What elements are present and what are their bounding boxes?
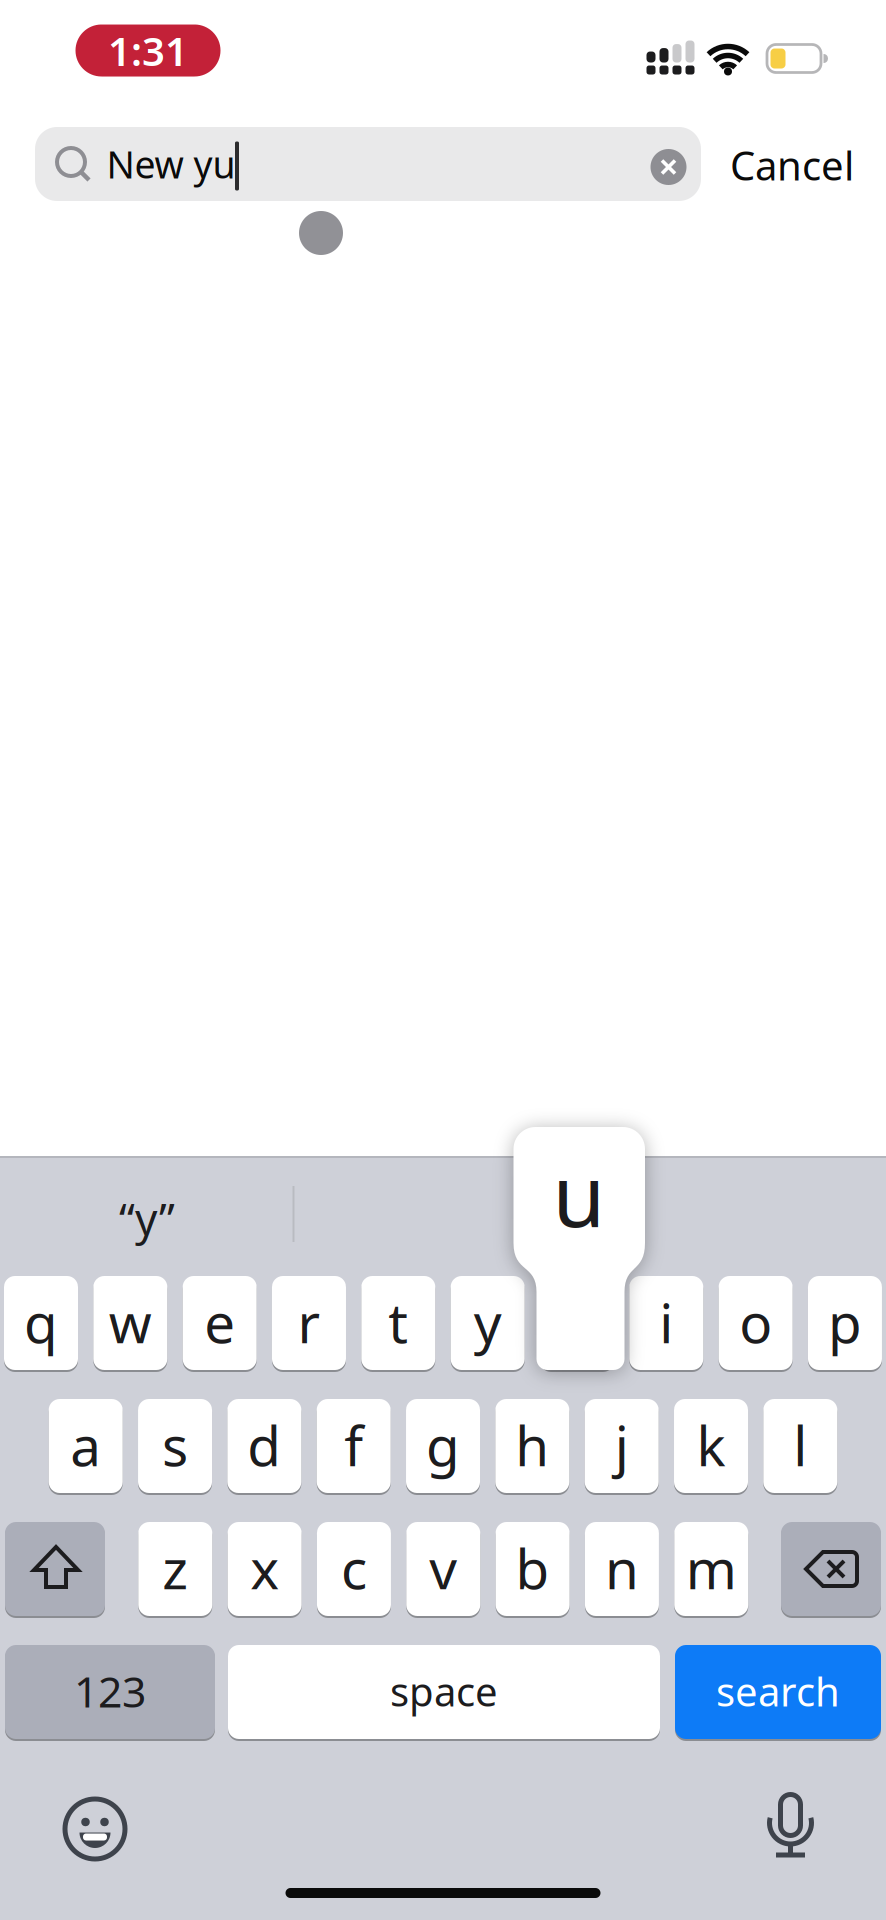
staticText: d	[247, 1409, 281, 1481]
button[interactable]: z	[138, 1522, 212, 1618]
button[interactable]: n	[585, 1522, 659, 1618]
button[interactable]	[754, 1793, 826, 1865]
staticText: n	[605, 1532, 639, 1604]
button[interactable]: “y”	[27, 1178, 267, 1258]
button[interactable]: x	[228, 1522, 302, 1618]
staticText: “y”	[119, 1189, 175, 1247]
staticText: q	[24, 1286, 58, 1358]
button[interactable]: y	[451, 1276, 525, 1372]
button[interactable]: k	[674, 1399, 748, 1495]
button[interactable]: r	[272, 1276, 346, 1372]
button[interactable]: g	[406, 1399, 480, 1495]
staticText: f	[344, 1409, 363, 1481]
button[interactable]: h	[495, 1399, 569, 1495]
staticText: c	[341, 1532, 367, 1604]
button[interactable]: 1:31	[75, 24, 220, 76]
staticText: s	[162, 1409, 188, 1481]
button[interactable]: b	[496, 1522, 570, 1618]
staticText: New yu	[106, 139, 235, 189]
staticText: p	[828, 1286, 862, 1358]
button[interactable]: c	[317, 1522, 391, 1618]
button[interactable]: u	[540, 1276, 614, 1372]
button[interactable]: l	[763, 1399, 837, 1495]
staticText: l	[793, 1409, 807, 1481]
button[interactable]: space	[228, 1645, 660, 1741]
button[interactable]: w	[93, 1276, 167, 1372]
button[interactable]: f	[317, 1399, 391, 1495]
button[interactable]	[59, 1793, 131, 1865]
staticText: e	[204, 1286, 235, 1358]
button[interactable]: t	[361, 1276, 435, 1372]
button[interactable]: m	[674, 1522, 748, 1618]
button[interactable]: Cancel	[730, 138, 854, 191]
button[interactable]: New yu	[35, 127, 701, 201]
staticText: z	[162, 1532, 188, 1604]
staticText: u	[552, 1137, 605, 1251]
staticText: m	[686, 1532, 737, 1604]
staticText: x	[250, 1532, 279, 1604]
staticText: y	[474, 1286, 502, 1358]
button[interactable]	[5, 1522, 105, 1618]
button[interactable]	[781, 1522, 881, 1618]
staticText: o	[739, 1286, 772, 1358]
button[interactable]: p	[808, 1276, 882, 1372]
staticText: b	[516, 1532, 550, 1604]
button[interactable]: 123	[5, 1645, 215, 1741]
staticText: t	[388, 1286, 408, 1358]
staticText: i	[659, 1286, 673, 1358]
button[interactable]: o	[719, 1276, 793, 1372]
button[interactable]: d	[227, 1399, 301, 1495]
staticText: j	[615, 1409, 629, 1481]
staticText: space	[390, 1664, 498, 1717]
button[interactable]: s	[138, 1399, 212, 1495]
staticText: Cancel	[730, 138, 854, 191]
staticText: search	[716, 1664, 840, 1717]
button[interactable]: j	[585, 1399, 659, 1495]
staticText: k	[696, 1409, 725, 1481]
button[interactable]: search	[675, 1645, 881, 1741]
button[interactable]: e	[183, 1276, 257, 1372]
staticText: 123	[74, 1663, 146, 1719]
staticText: h	[515, 1409, 549, 1481]
staticText: w	[109, 1286, 152, 1358]
staticText: 1:31	[108, 24, 188, 77]
staticText: r	[297, 1286, 320, 1358]
staticText: g	[426, 1409, 460, 1481]
staticText: a	[70, 1409, 101, 1481]
button[interactable]: a	[49, 1399, 123, 1495]
button[interactable]: v	[406, 1522, 480, 1618]
button[interactable]: q	[4, 1276, 78, 1372]
button[interactable]: i	[629, 1276, 703, 1372]
staticText: v	[429, 1532, 457, 1604]
